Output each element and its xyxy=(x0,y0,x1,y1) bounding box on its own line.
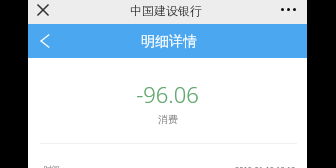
staticText: 2019-01-19 12:13 xyxy=(235,164,296,168)
staticText: 明细详情 xyxy=(141,33,197,51)
button[interactable]: 时间 xyxy=(28,144,307,168)
staticText: -96.06 xyxy=(136,79,199,109)
staticText: 中国建设银行 xyxy=(130,3,202,18)
staticText: 消费 xyxy=(158,113,178,126)
staticText: 时间 xyxy=(44,164,60,168)
button[interactable]: More options xyxy=(279,0,297,18)
button[interactable]: Back xyxy=(33,29,57,53)
button[interactable]: Close xyxy=(33,0,53,20)
